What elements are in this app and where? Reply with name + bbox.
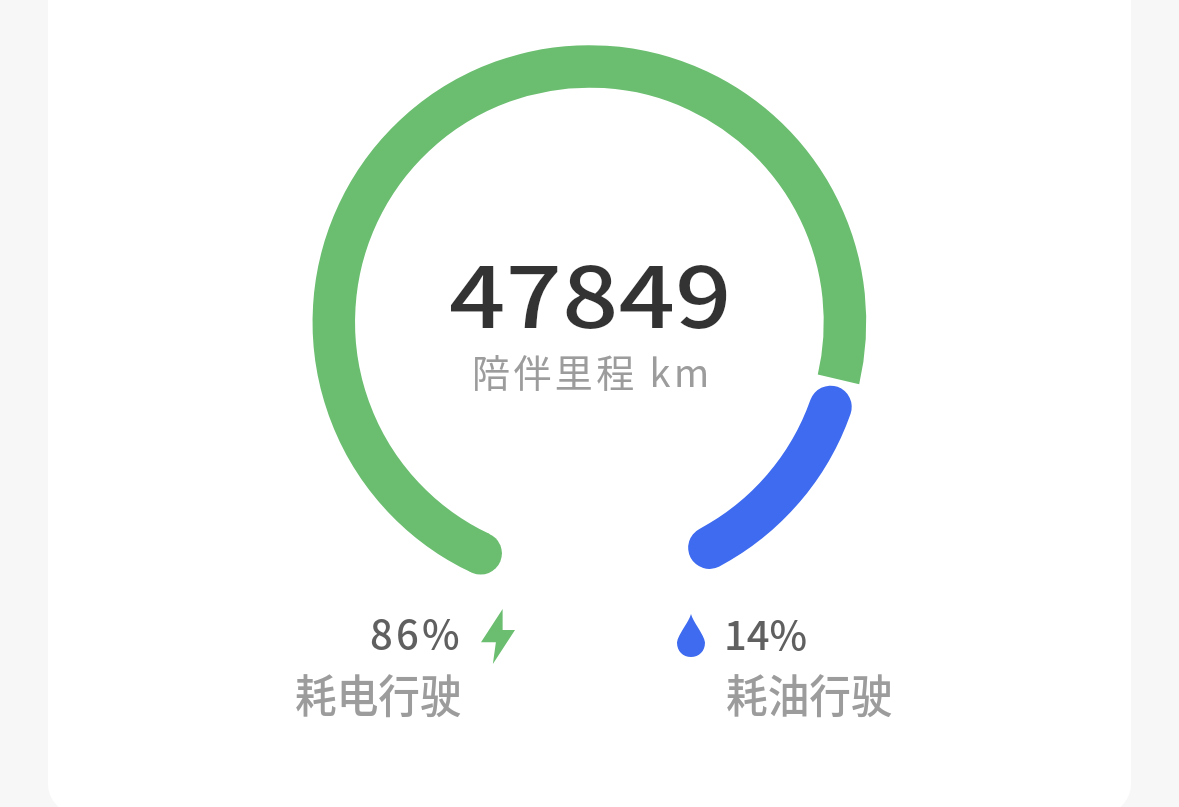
staticText: 耗电行驶: [295, 661, 462, 726]
staticText: 47849: [449, 231, 732, 353]
staticText: 耗油行驶: [726, 661, 893, 726]
button[interactable]: 耗油行驶: [726, 661, 907, 726]
staticText: 14%: [724, 604, 808, 662]
staticText: 陪伴里程 km: [472, 343, 713, 398]
button[interactable]: 耗电行驶: [295, 661, 476, 726]
other: Fuel driving: [677, 614, 705, 657]
button[interactable]: [48, 0, 1131, 807]
button[interactable]: Fuel driving: [665, 598, 820, 668]
button[interactable]: 86%: [355, 598, 530, 668]
staticText: 86%: [370, 603, 463, 661]
other: Electric driving: [481, 609, 515, 664]
